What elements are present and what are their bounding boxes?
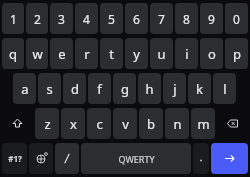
staticText: p	[233, 45, 241, 63]
button[interactable]: n	[165, 108, 189, 139]
staticText: 3	[58, 11, 65, 27]
staticText: 2	[34, 11, 41, 27]
button[interactable]: o	[200, 38, 223, 69]
staticText: 6	[133, 11, 140, 27]
button[interactable]: 5	[100, 3, 123, 34]
button[interactable]: j	[163, 73, 186, 104]
button[interactable]: s	[38, 73, 61, 104]
button[interactable]: 8	[175, 3, 198, 34]
button[interactable]: x	[61, 108, 85, 139]
staticText: a	[21, 80, 29, 98]
button[interactable]: e	[50, 38, 73, 69]
button[interactable]: w	[26, 38, 48, 69]
button[interactable]: q	[2, 38, 24, 69]
staticText: o	[208, 45, 216, 63]
staticText: 7	[158, 11, 165, 27]
staticText: i	[185, 45, 189, 63]
button[interactable]: z	[35, 108, 59, 139]
button[interactable]: d	[63, 73, 86, 104]
button[interactable]: m	[191, 108, 215, 139]
button[interactable]: Backspace	[217, 108, 248, 139]
staticText: 4	[83, 11, 90, 27]
staticText: q	[9, 45, 17, 63]
button[interactable]: b	[139, 108, 163, 139]
staticText: 5	[108, 11, 115, 27]
button[interactable]: 9	[200, 3, 223, 34]
staticText: j	[173, 80, 177, 98]
button[interactable]: 1	[2, 3, 24, 34]
staticText: 1	[10, 11, 17, 27]
button[interactable]: t	[100, 38, 123, 69]
staticText: w	[32, 45, 43, 63]
staticText: z	[44, 115, 51, 133]
staticText: c	[96, 115, 103, 133]
staticText: QWERTY	[118, 153, 155, 165]
button[interactable]: u	[150, 38, 173, 69]
staticText: f	[97, 80, 102, 98]
button[interactable]: Enter	[211, 143, 248, 174]
button[interactable]: f	[88, 73, 111, 104]
button[interactable]: l	[213, 73, 236, 104]
staticText: n	[173, 115, 182, 133]
button[interactable]: 3	[50, 3, 73, 34]
button[interactable]: c	[87, 108, 111, 139]
staticText: t	[109, 45, 114, 63]
staticText: h	[145, 80, 154, 98]
button[interactable]: a	[13, 73, 36, 104]
staticText: s	[46, 80, 53, 98]
staticText: #1?	[8, 153, 22, 164]
staticText: m	[197, 115, 210, 133]
staticText: r	[84, 45, 90, 63]
staticText: 8	[183, 11, 190, 27]
button[interactable]: r	[75, 38, 98, 69]
button[interactable]: h	[138, 73, 161, 104]
button[interactable]: y	[125, 38, 148, 69]
button[interactable]: Change keyboard	[29, 143, 53, 174]
button[interactable]: 6	[125, 3, 148, 34]
button[interactable]: k	[188, 73, 211, 104]
button[interactable]: 4	[75, 3, 98, 34]
button[interactable]: Shift	[2, 108, 33, 139]
button[interactable]: Slash	[55, 143, 79, 174]
staticText: x	[70, 115, 77, 133]
staticText: 9	[208, 11, 215, 27]
staticText: g	[121, 80, 129, 98]
staticText: y	[133, 45, 140, 63]
staticText: k	[196, 80, 203, 98]
staticText: d	[71, 80, 79, 98]
button[interactable]: g	[113, 73, 136, 104]
button[interactable]: 7	[150, 3, 173, 34]
button[interactable]: p	[225, 38, 248, 69]
staticText: v	[122, 115, 129, 133]
button[interactable]: 2	[26, 3, 48, 34]
button[interactable]: Period	[193, 143, 209, 174]
button[interactable]: #1?	[2, 143, 27, 174]
staticText: l	[223, 80, 227, 98]
staticText: b	[147, 115, 155, 133]
button[interactable]: i	[175, 38, 198, 69]
staticText: u	[157, 45, 166, 63]
button[interactable]: QWERTY	[81, 143, 191, 174]
button[interactable]: v	[113, 108, 137, 139]
staticText: e	[58, 45, 66, 63]
staticText: 0	[233, 11, 240, 27]
button[interactable]: 0	[225, 3, 248, 34]
